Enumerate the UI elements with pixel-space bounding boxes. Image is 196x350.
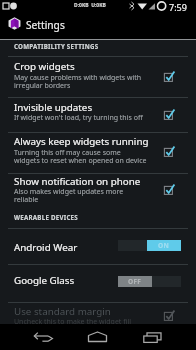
button[interactable]: Crop widgets: [163, 67, 177, 81]
staticText: May cause problems with widgets with: [14, 73, 142, 83]
button[interactable]: Back: [28, 324, 60, 350]
staticText: OFF: [128, 277, 142, 286]
staticText: widgets to reset when opened on device: [14, 156, 147, 166]
button[interactable]: Recent apps: [138, 324, 166, 350]
staticText: Turning this off may cause some: [14, 148, 121, 158]
staticText: COMPATIBILITY SETTINGS: [14, 42, 99, 50]
staticText: Always keep widgets running: [14, 135, 149, 148]
staticText: ON: [158, 241, 170, 250]
button[interactable]: Use standard margin: [163, 306, 177, 320]
staticText: Invisible updates: [14, 101, 93, 114]
button[interactable]: Home: [84, 324, 112, 350]
staticText: Also makes widget updates more: [14, 187, 124, 197]
staticText: Google Glass: [14, 274, 75, 287]
staticText: If widget won't load, try turning this o…: [14, 113, 143, 123]
staticText: 7:59: [169, 1, 187, 13]
staticText: Use standard margin: [14, 305, 111, 318]
staticText: Show notification on phone: [14, 175, 141, 188]
button[interactable]: [0, 236, 196, 262]
staticText: Android Wear: [14, 241, 78, 254]
staticText: Settings: [26, 18, 65, 32]
staticText: reliable: [14, 195, 39, 205]
button[interactable]: Always keep widgets running: [163, 142, 177, 156]
button[interactable]: [0, 272, 196, 298]
staticText: Crop widgets: [14, 60, 75, 73]
staticText: WEARABLE DEVICES: [14, 213, 78, 221]
staticText: irregular borders: [14, 81, 71, 91]
button[interactable]: Show notification on phone: [163, 180, 177, 194]
button[interactable]: Invisible updates: [163, 105, 177, 119]
staticText: Uncheck this to make the widget fill: [14, 317, 132, 327]
staticText: D:0KB U:0KB: [74, 2, 106, 9]
